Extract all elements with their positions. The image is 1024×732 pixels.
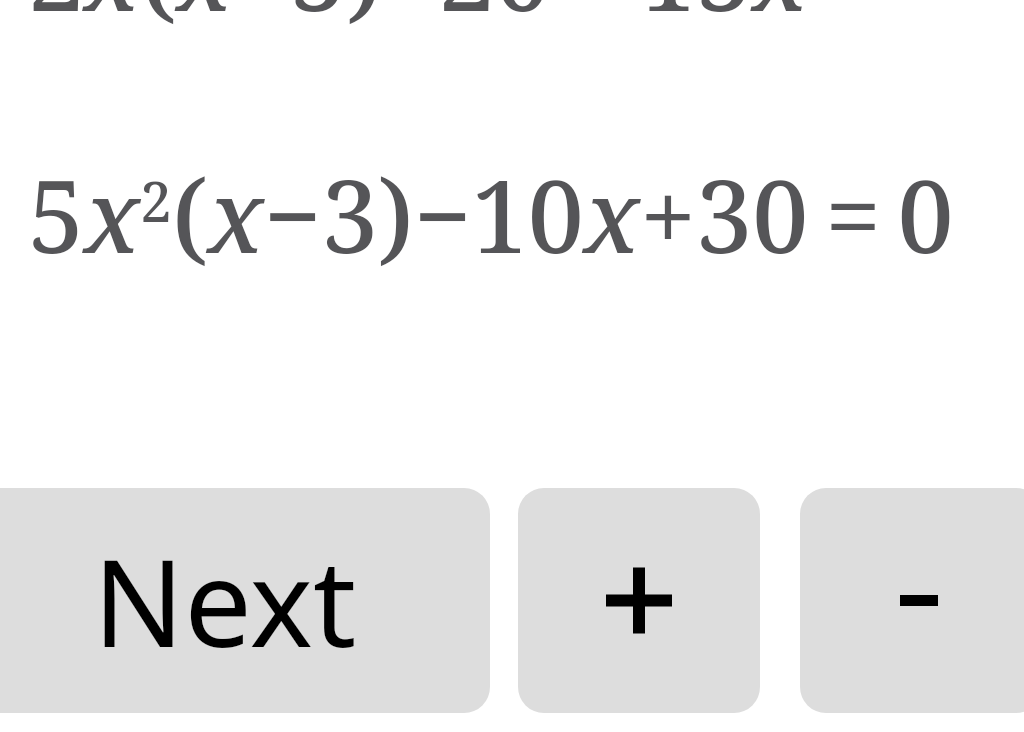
button[interactable]: Increase xyxy=(518,488,760,713)
staticText: 5x2(x−3)−10x+30 = 0 xyxy=(28,146,954,282)
button[interactable]: Next xyxy=(0,488,490,713)
staticText: Next xyxy=(93,519,357,682)
staticText: 2x(x−5)+20 = 15x xyxy=(28,0,809,40)
button[interactable]: Decrease xyxy=(800,488,1024,713)
